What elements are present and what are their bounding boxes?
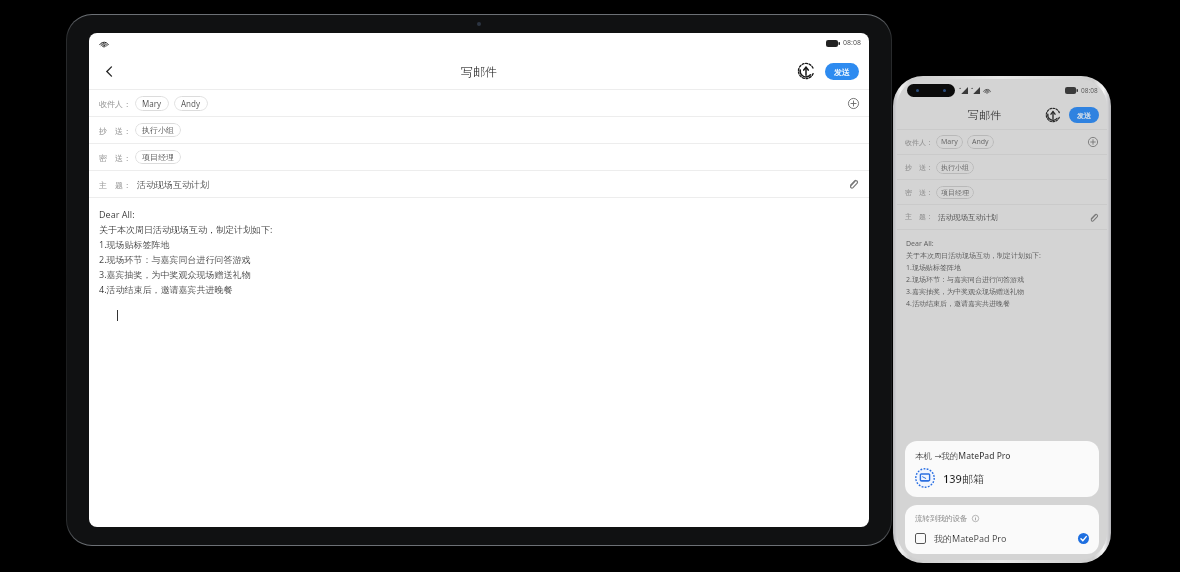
staticText: 2.现场环节：与嘉宾同台进行问答游戏 [99,253,251,265]
staticText: 密 送： [905,188,933,198]
staticText: 3.嘉宾抽奖，为中奖观众现场赠送礼物 [906,287,1024,297]
staticText: 08:08 [843,38,861,48]
staticText: 1.现场贴标签阵地 [906,263,961,273]
staticText: 活动现场互动计划 [938,213,998,222]
button[interactable]: 发送 [1069,107,1099,123]
button[interactable]: 密 送： [897,180,1107,204]
button[interactable]: 主 题： [897,205,1107,229]
staticText: 发送 [834,67,850,77]
button[interactable]: 主 题： [89,171,869,197]
staticText: 主 题： [99,179,131,190]
staticText: 139邮箱 [943,471,984,486]
button[interactable]: Attach file [845,176,861,192]
staticText: 关于本次周日活动现场互动，制定计划如下: [99,223,273,235]
button[interactable]: 本机 →我的MatePad Pro [905,441,1099,497]
button[interactable]: 抄 送： [89,117,869,143]
staticText: Mary [941,137,958,147]
button[interactable]: Add recipient [845,95,861,111]
staticText: 我的MatePad Pro [934,532,1007,544]
staticText: Dear All: [906,239,934,249]
staticText: 08:08 [1081,86,1098,95]
staticText: 2.现场环节：与嘉宾同台进行问答游戏 [906,275,1024,285]
staticText: 1.现场贴标签阵地 [99,238,170,250]
button[interactable]: Cast to device [795,60,817,82]
staticText: 发送 [1077,111,1091,120]
staticText: Mary [142,98,162,109]
staticText: 本机 →我的MatePad Pro [915,450,1011,462]
staticText: 项目经理 [142,152,174,162]
button[interactable]: 密 送： [89,144,869,170]
staticText: 抄 送： [905,163,933,173]
staticText: 4.活动结束后，邀请嘉宾共进晚餐 [99,283,233,295]
button[interactable]: 发送 [825,63,859,80]
staticText: 项目经理 [941,188,969,197]
button[interactable]: Cast to device [1043,105,1063,125]
staticText: 3.嘉宾抽奖，为中奖观众现场赠送礼物 [99,268,251,280]
staticText: Andy [972,137,989,147]
staticText: Dear All: [99,208,135,220]
staticText: 活动现场互动计划 [137,179,209,190]
button[interactable]: Attach file [1086,210,1100,224]
staticText: 收件人： [99,99,131,109]
button[interactable]: 收件人： [897,130,1107,154]
staticText: 执行小组 [941,163,969,172]
staticText: 收件人： [905,138,933,147]
staticText: 抄 送： [99,125,131,136]
staticText: 密 送： [99,152,131,163]
button[interactable]: Back [95,57,123,85]
staticText: Andy [181,98,201,109]
button[interactable]: 收件人： [89,90,869,116]
button[interactable]: 我的MatePad Pro [915,532,1089,544]
button[interactable]: Add recipient [1086,135,1100,149]
button[interactable]: 抄 送： [897,155,1107,179]
staticText: 执行小组 [142,125,174,135]
staticText: 关于本次周日活动现场互动，制定计划如下: [906,251,1041,261]
staticText: 写邮件 [461,64,497,79]
staticText: 主 题： [905,212,933,222]
staticText: 4.活动结束后，邀请嘉宾共进晚餐 [906,299,1010,309]
staticText: 写邮件 [968,108,1001,122]
staticText: 流转到我的设备 [915,514,968,523]
